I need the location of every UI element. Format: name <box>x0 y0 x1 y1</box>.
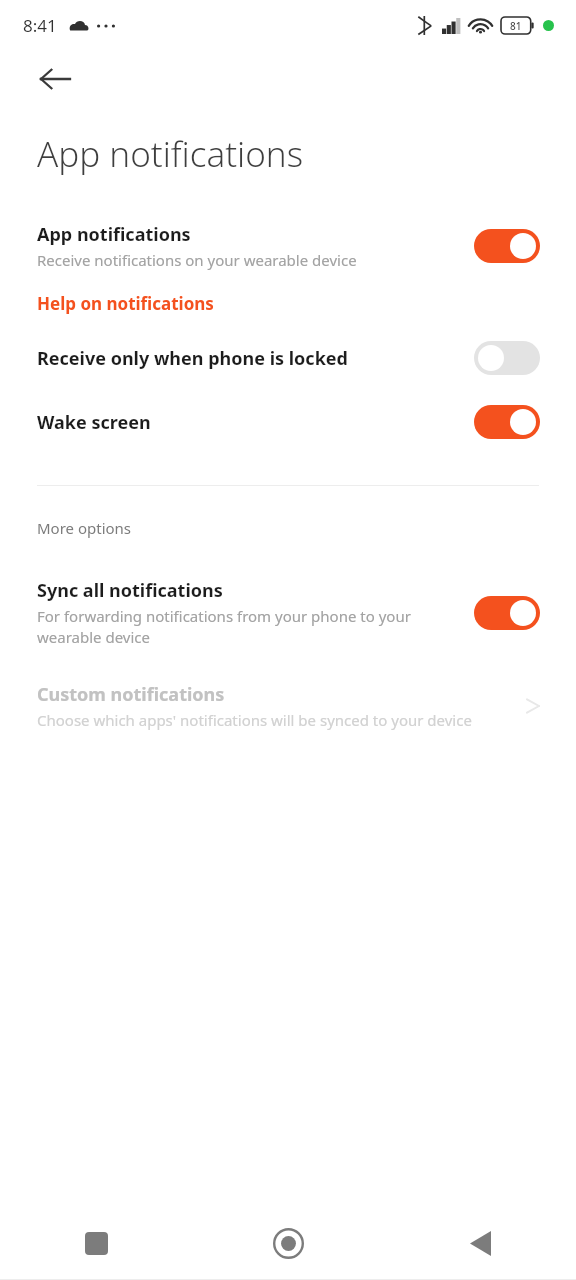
button[interactable]: Off <box>474 341 540 375</box>
staticText: Receive only when phone is locked <box>37 346 348 371</box>
button[interactable]: On <box>474 405 540 439</box>
button[interactable]: Back <box>384 1206 576 1280</box>
button[interactable]: Recents <box>0 1206 192 1280</box>
staticText: For forwarding notifications from your p… <box>37 606 411 648</box>
button[interactable]: On <box>474 596 540 630</box>
staticText: Sync all notifications <box>37 578 223 603</box>
button[interactable]: Custom notifications <box>0 676 576 736</box>
button[interactable]: App notifications <box>0 214 576 278</box>
staticText: More options <box>37 518 132 538</box>
button[interactable]: Sync all notifications <box>0 570 576 656</box>
button[interactable]: Receive only when phone is locked <box>0 333 576 383</box>
button[interactable]: Home <box>192 1206 384 1280</box>
staticText: Wake screen <box>37 410 151 435</box>
button[interactable]: Help on notifications <box>0 278 234 325</box>
staticText: Help on notifications <box>37 292 214 315</box>
staticText: 81 <box>510 19 522 33</box>
button[interactable]: Back <box>26 50 84 108</box>
staticText: Choose which apps' notifications will be… <box>37 710 472 730</box>
staticText: Receive notifications on your wearable d… <box>37 250 357 270</box>
staticText: App notifications <box>37 130 304 178</box>
staticText: 8:41 <box>23 14 57 37</box>
staticText: Custom notifications <box>37 682 225 707</box>
button[interactable]: Wake screen <box>0 397 576 447</box>
button[interactable]: On <box>474 229 540 263</box>
staticText: App notifications <box>37 222 191 247</box>
